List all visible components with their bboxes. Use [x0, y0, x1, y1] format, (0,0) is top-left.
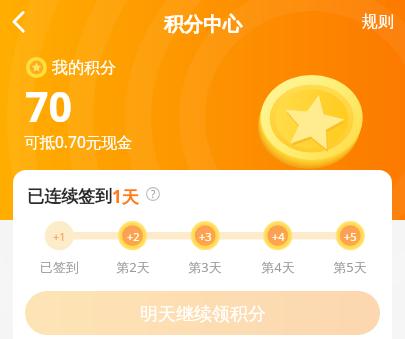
staticText: 第3天	[188, 258, 222, 276]
staticText: ?	[151, 187, 156, 201]
staticText: 第4天	[261, 258, 295, 276]
staticText: 1天	[112, 185, 139, 208]
staticText: +4	[272, 229, 285, 244]
staticText: +5	[344, 229, 357, 244]
staticText: 规则	[362, 12, 394, 32]
button[interactable]: 规则	[351, 4, 405, 40]
staticText: 可抵0.70元现金	[24, 131, 133, 152]
button[interactable]: Help	[146, 187, 160, 201]
staticText: 已连续签到	[27, 186, 112, 207]
staticText: +2	[127, 229, 140, 244]
button[interactable]: 明天继续领积分	[25, 291, 380, 335]
staticText: 积分中心	[164, 12, 242, 37]
staticText: +3	[199, 229, 212, 244]
staticText: 明天继续领积分	[140, 303, 266, 326]
button[interactable]: Back	[0, 1, 42, 43]
staticText: 第2天	[116, 258, 150, 276]
staticText: +1	[53, 229, 66, 244]
staticText: 第5天	[333, 258, 367, 276]
staticText: 我的积分	[52, 58, 116, 78]
staticText: 70	[25, 78, 72, 134]
staticText: 已签到	[40, 259, 79, 275]
